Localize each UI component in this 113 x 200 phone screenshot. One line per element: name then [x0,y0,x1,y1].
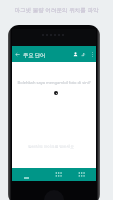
button[interactable]: Account [71,46,79,62]
staticText: 주요 단어 [23,51,46,58]
staticText: 말하려면 마이크를 탭하세요 [9,144,93,149]
staticText: Bolehkah saya mengambil foto di sini? [12,80,96,86]
button[interactable] [18,168,35,181]
button[interactable]: Keyboard [50,168,67,181]
button[interactable]: Camera [73,168,90,181]
button[interactable]: Back [13,46,22,62]
button[interactable]: Share [79,46,87,62]
staticText: 마그넷 물량 어려운의 위치를 파악 [0,6,113,14]
button[interactable]: More options [88,46,96,62]
